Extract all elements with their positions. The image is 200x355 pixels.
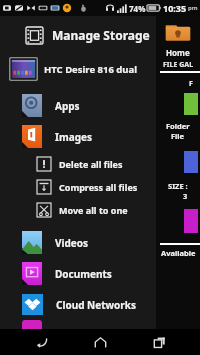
- staticText: SIZE :: [168, 181, 188, 191]
- button[interactable]: Move all to one location: [0, 198, 156, 221]
- button[interactable]: Back: [25, 329, 59, 355]
- button[interactable]: [0, 320, 156, 329]
- staticText: Cloud Networks: [56, 298, 137, 312]
- staticText: Videos: [55, 236, 89, 250]
- button[interactable]: Compress all files: [0, 175, 156, 198]
- staticText: Apps: [55, 99, 80, 113]
- staticText: 10:35: [163, 2, 187, 14]
- button[interactable]: Videos: [0, 227, 156, 258]
- staticText: Compress all files: [59, 181, 138, 193]
- button[interactable]: Recent apps: [142, 329, 176, 355]
- staticText: Move all to one location: [59, 204, 156, 216]
- staticText: 3: [183, 191, 188, 201]
- button[interactable]: Home folder: [164, 19, 192, 47]
- staticText: pm: [188, 4, 198, 12]
- button[interactable]: Delete all files: [0, 152, 156, 175]
- staticText: Home: [166, 47, 190, 58]
- button[interactable]: Images: [0, 121, 156, 152]
- staticText: Delete all files: [59, 158, 123, 170]
- button[interactable]: Apps: [0, 90, 156, 121]
- button[interactable]: Manage Storage: [0, 16, 156, 54]
- staticText: F: [189, 79, 193, 89]
- staticText: File: [171, 131, 185, 141]
- staticText: 74%: [129, 3, 146, 14]
- staticText: HTC Desire 816 dual sim: [44, 63, 156, 76]
- staticText: Available: [161, 248, 196, 258]
- staticText: Images: [55, 130, 92, 144]
- button[interactable]: Home: [83, 329, 117, 355]
- staticText: FILE GAL: [163, 60, 194, 70]
- staticText: Documents: [55, 267, 112, 281]
- button[interactable]: Documents: [0, 258, 156, 289]
- staticText: Folder: [166, 121, 190, 131]
- staticText: Manage Storage: [52, 27, 150, 43]
- button[interactable]: HTC Desire 816 dual sim: [0, 54, 156, 84]
- button[interactable]: Cloud Networks: [0, 289, 156, 320]
